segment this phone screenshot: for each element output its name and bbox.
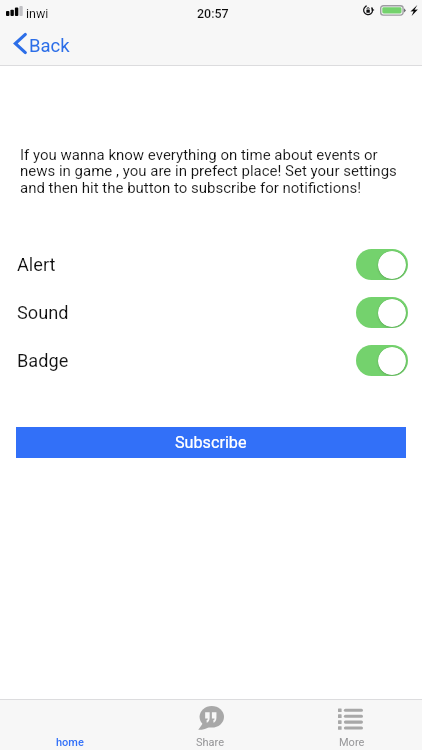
- other: More: [338, 706, 363, 727]
- button[interactable]: Subscribe: [16, 427, 406, 458]
- button[interactable]: Alert: [0, 249, 422, 280]
- button[interactable]: Share: [140, 700, 281, 750]
- staticText: Subscribe: [175, 433, 247, 452]
- staticText: home: [56, 736, 84, 749]
- staticText: If you wanna know everything on time abo…: [20, 146, 406, 197]
- staticText: Back: [29, 35, 70, 57]
- button[interactable]: Badge: [0, 345, 422, 376]
- staticText: Share: [196, 736, 225, 749]
- staticText: More: [339, 736, 365, 749]
- button[interactable]: Back: [13, 35, 70, 57]
- staticText: inwi: [26, 6, 49, 21]
- button[interactable]: More: [281, 700, 422, 750]
- button[interactable]: home: [0, 700, 140, 750]
- staticText: Sound: [17, 302, 69, 323]
- staticText: Alert: [17, 254, 56, 275]
- staticText: Badge: [17, 350, 69, 371]
- button[interactable]: Sound: [0, 297, 422, 328]
- staticText: 20:57: [197, 6, 229, 21]
- other: Share: [198, 706, 224, 730]
